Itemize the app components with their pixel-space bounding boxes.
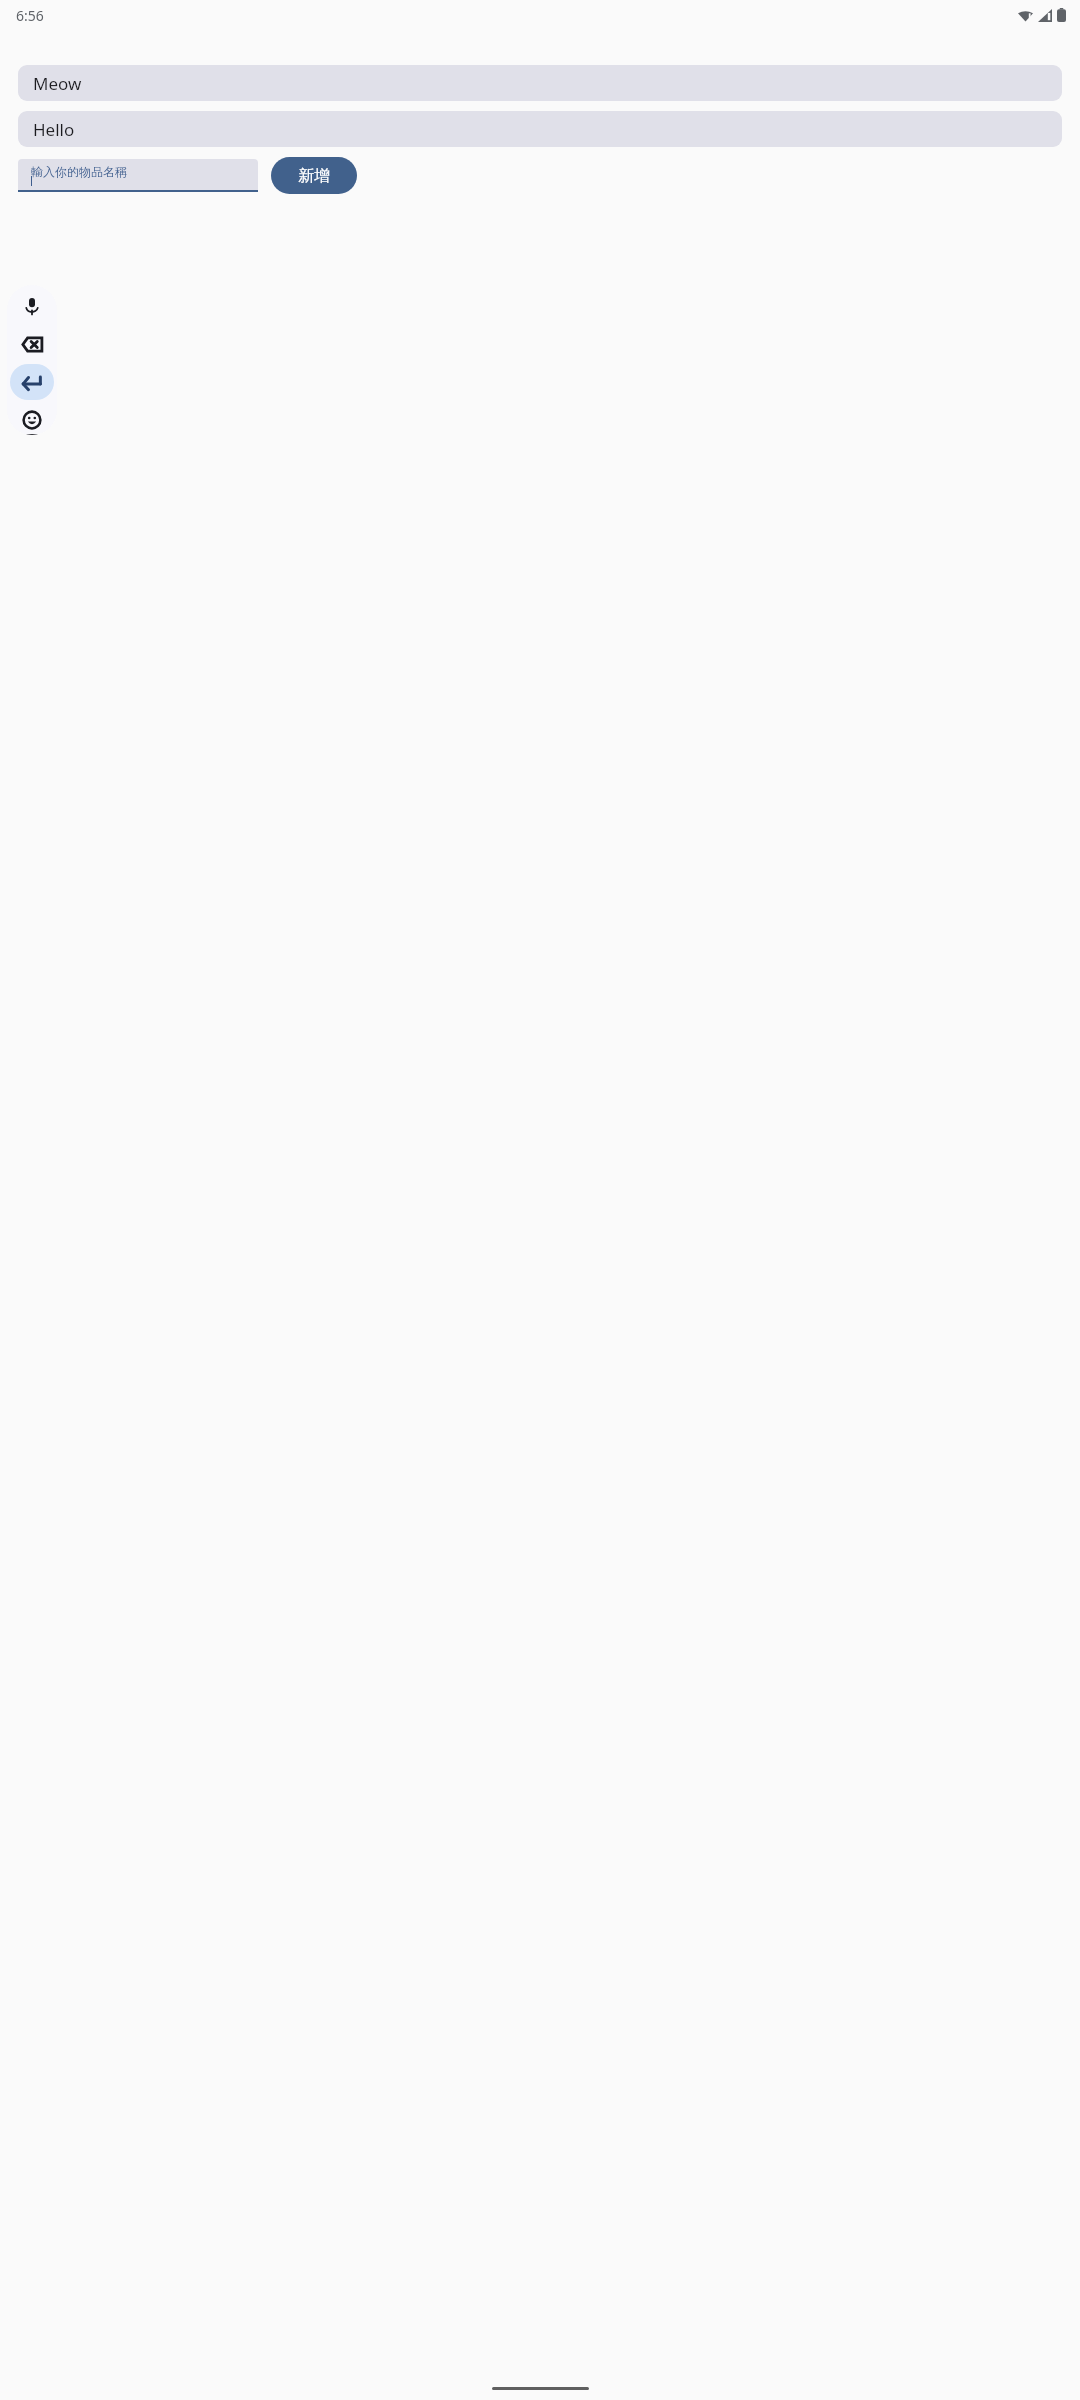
button[interactable]: Backspace [12,329,52,359]
button[interactable]: 新增 [271,157,357,194]
button[interactable]: Meow [18,65,1062,101]
staticText: 新增 [298,166,330,186]
button[interactable]: 輸入你的物品名稱 [18,159,258,192]
button[interactable]: Enter [10,364,54,400]
staticText: Meow [33,72,82,95]
staticText: Hello [33,118,75,141]
button[interactable]: Emoji [12,405,52,435]
staticText: 輸入你的物品名稱 [31,164,127,179]
staticText: 6:56 [16,6,44,25]
button[interactable]: Hello [18,111,1062,147]
button[interactable]: Voice input [12,291,52,321]
